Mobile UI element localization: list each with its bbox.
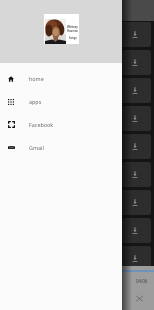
staticText: Gmail (29, 144, 44, 151)
button[interactable]: Download (128, 196, 141, 209)
button[interactable]: Download (128, 112, 141, 125)
button[interactable]: Download track (5, 218, 151, 243)
button[interactable]: Download (128, 140, 141, 153)
button[interactable]: Download (128, 28, 141, 41)
button[interactable]: Download track (5, 162, 151, 187)
button[interactable]: Facebook (0, 113, 122, 136)
button[interactable]: Download track (5, 78, 151, 103)
button[interactable]: Download (128, 224, 141, 237)
button[interactable]: Download track (5, 134, 151, 159)
staticText: home (29, 75, 44, 82)
staticText: Houston (67, 29, 79, 33)
button[interactable]: home (0, 67, 122, 90)
button[interactable]: Download (128, 84, 141, 97)
button[interactable]: apps (0, 90, 122, 113)
button[interactable]: Shuffle (133, 292, 146, 305)
button[interactable]: Download track (5, 190, 151, 215)
button[interactable]: Gmail (0, 136, 122, 159)
button[interactable]: Download track (5, 106, 151, 131)
button[interactable]: Download track (5, 246, 151, 271)
staticText: Songs (69, 36, 77, 40)
button[interactable]: Download (128, 168, 141, 181)
button[interactable]: Download track (5, 22, 151, 47)
staticText: 04:06 (136, 278, 148, 284)
staticText: Facebook (29, 121, 54, 128)
button[interactable]: Download track (5, 50, 151, 75)
staticText: apps (29, 98, 42, 105)
button[interactable]: Download (128, 56, 141, 69)
button[interactable]: Download (128, 252, 141, 265)
staticText: Whitney (67, 25, 78, 29)
